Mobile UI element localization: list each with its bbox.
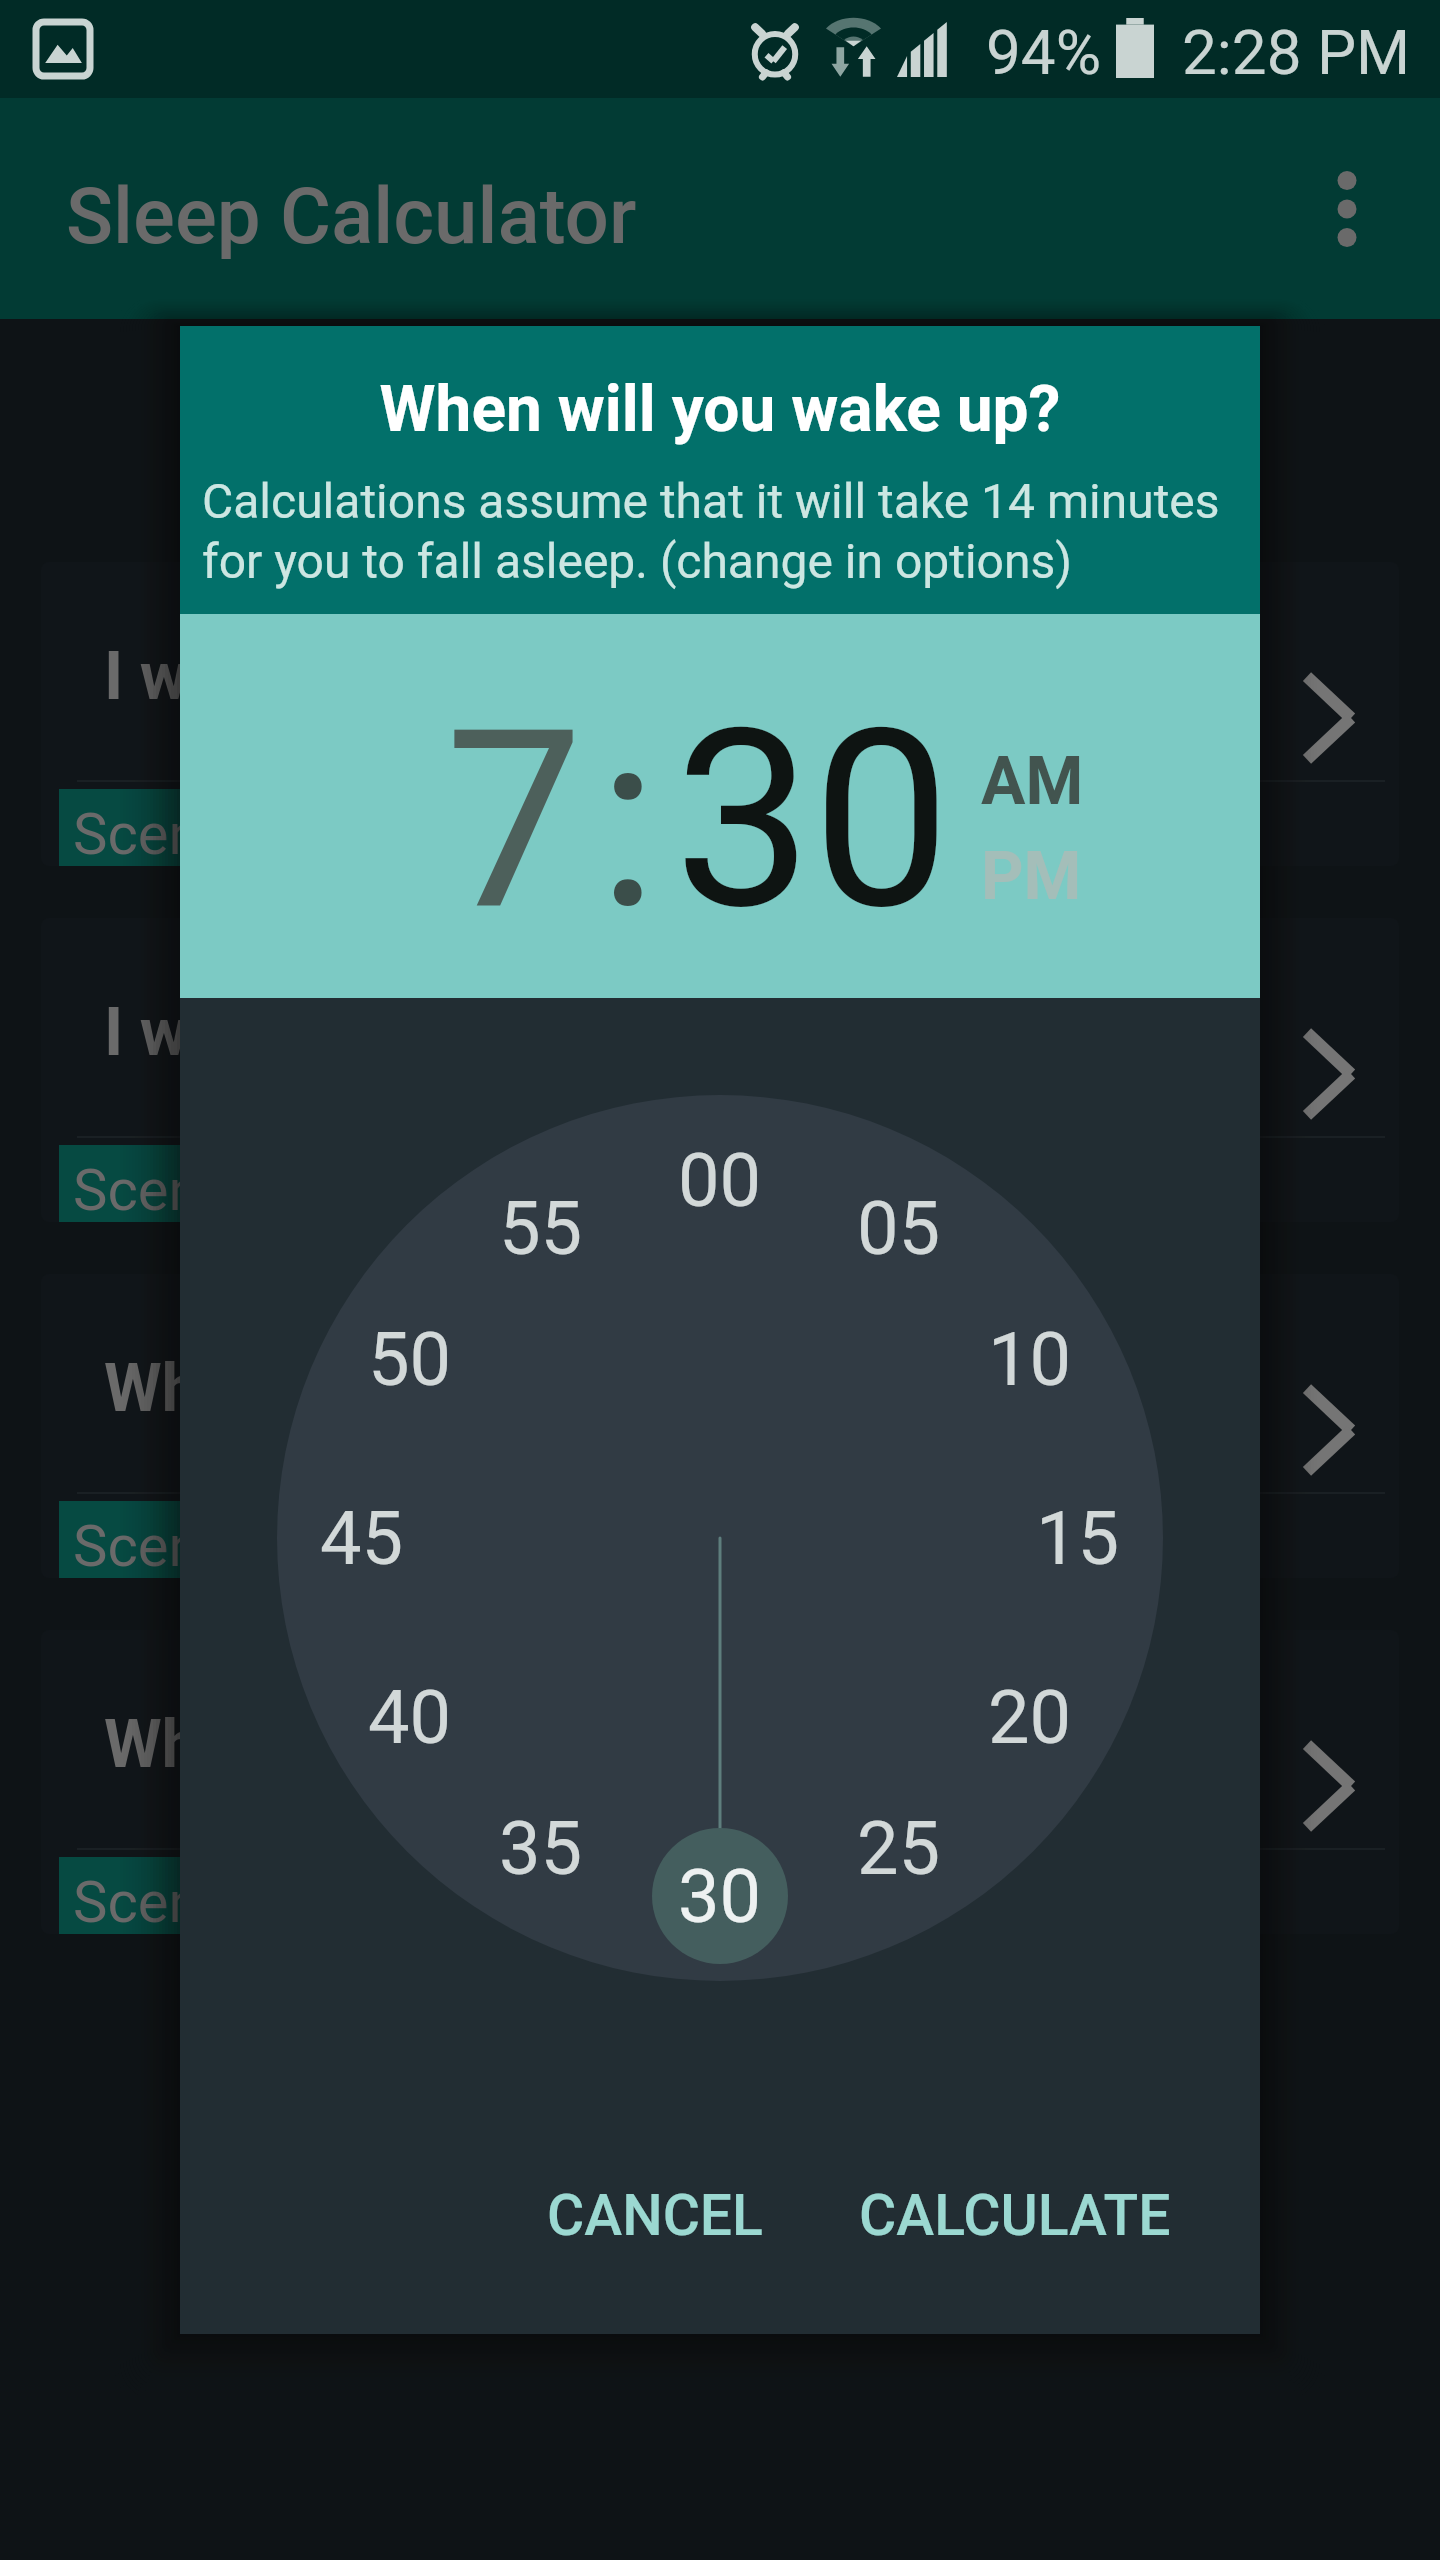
button[interactable]: 05 — [809, 1166, 989, 1290]
staticText: 94% — [986, 16, 1102, 89]
button[interactable]: Open — [1300, 1383, 1358, 1477]
button[interactable]: 45 — [272, 1476, 452, 1600]
staticText: 40 — [368, 1674, 452, 1761]
button[interactable]: Scenario — [59, 789, 313, 866]
button[interactable]: 35 — [451, 1786, 631, 1910]
button[interactable]: More options — [1282, 144, 1412, 274]
button[interactable]: 00 — [630, 1118, 810, 1242]
staticText: 35 — [499, 1805, 583, 1892]
button[interactable]: 40 — [320, 1655, 500, 1779]
button[interactable]: Open — [1300, 1739, 1358, 1833]
staticText: 00 — [678, 1137, 762, 1224]
button[interactable]: Scenario — [59, 1501, 313, 1578]
button[interactable]: I want to wake up at... — [41, 562, 1399, 866]
staticText: PM — [981, 838, 1082, 915]
staticText: When should I go to sleep? — [104, 1706, 900, 1783]
staticText: 2:28 PM — [1182, 16, 1411, 89]
button[interactable]: Open — [1300, 671, 1358, 765]
button[interactable]: When should I wake up? — [41, 1274, 1399, 1578]
staticText: 10 — [988, 1316, 1072, 1403]
staticText: 50 — [368, 1316, 452, 1403]
button[interactable]: 55 — [451, 1166, 631, 1290]
button[interactable]: 30 — [674, 677, 951, 965]
staticText: 05 — [857, 1185, 941, 1272]
staticText: When should I wake up? — [104, 1350, 818, 1427]
staticText: AM — [981, 743, 1084, 820]
button[interactable]: 25 — [809, 1786, 989, 1910]
staticText: I want to go to bed at... — [104, 994, 783, 1071]
staticText: Scenario — [73, 1156, 299, 1222]
button[interactable]: Open — [1300, 1027, 1358, 1121]
button[interactable]: 20 — [940, 1655, 1120, 1779]
button[interactable]: Scenario — [59, 1857, 313, 1934]
button[interactable]: CALCULATE — [829, 2168, 1201, 2263]
staticText: for you to fall asleep. (change in optio… — [202, 533, 1072, 589]
staticText: 15 — [1036, 1495, 1120, 1582]
staticText: Scenario — [73, 1512, 299, 1578]
button[interactable]: CANCEL — [517, 2168, 793, 2263]
staticText: CANCEL — [547, 2182, 763, 2249]
staticText: CALCULATE — [859, 2182, 1171, 2249]
button[interactable]: AM — [981, 743, 1084, 820]
staticText: 25 — [857, 1805, 941, 1892]
button[interactable]: When should I go to sleep? — [41, 1630, 1399, 1934]
staticText: Sleep Calculator — [66, 171, 637, 262]
staticText: Calculations assume that it will take 14… — [202, 473, 1220, 529]
button[interactable]: Scenario — [59, 1145, 313, 1222]
button[interactable]: 10 — [940, 1297, 1120, 1421]
staticText: 45 — [320, 1495, 404, 1582]
button[interactable]: PM — [981, 838, 1082, 915]
staticText: 20 — [988, 1674, 1072, 1761]
button[interactable]: 50 — [320, 1297, 500, 1421]
staticText: When will you wake up? — [180, 372, 1260, 447]
button[interactable]: I want to go to bed at... — [41, 918, 1399, 1222]
staticText: 55 — [499, 1185, 583, 1272]
button[interactable]: 15 — [988, 1476, 1168, 1600]
staticText: : — [598, 677, 658, 965]
staticText: I want to wake up at... — [104, 638, 751, 715]
staticText: Scenario — [73, 1868, 299, 1934]
staticText: Scenario — [73, 800, 299, 866]
button[interactable]: 7 — [445, 677, 584, 965]
button[interactable]: 30 — [630, 1834, 810, 1958]
staticText: 30 — [678, 1853, 762, 1940]
